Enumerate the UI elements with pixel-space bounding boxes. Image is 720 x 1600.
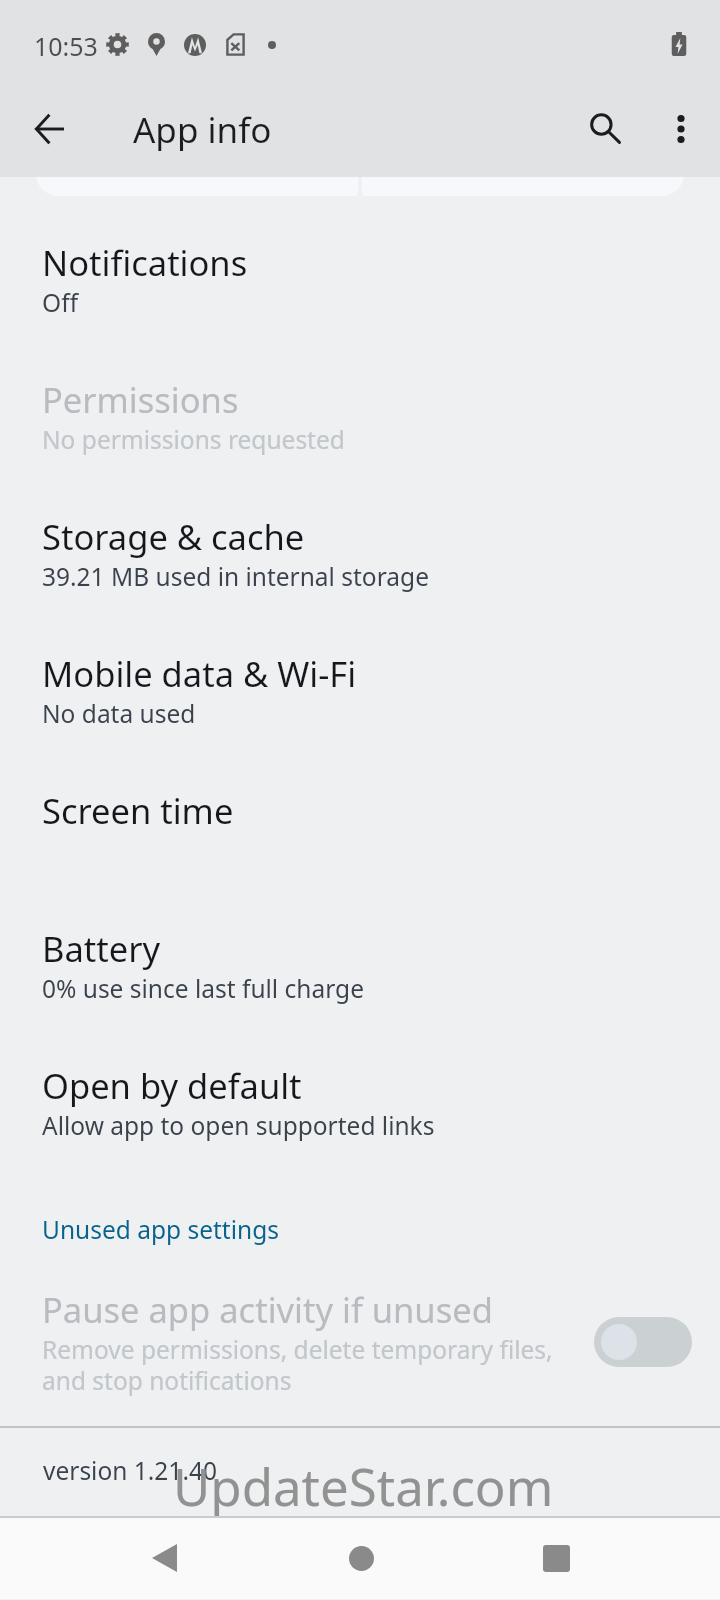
staticText: UpdateStar.com	[173, 1451, 554, 1518]
staticText: App info	[133, 106, 272, 154]
button[interactable]: Home	[316, 1513, 406, 1600]
staticText: 39.21 MB used in internal storage	[42, 560, 429, 593]
staticText: Off	[42, 286, 78, 319]
staticText: Open by default	[42, 1062, 302, 1109]
staticText: Allow app to open supported links	[42, 1109, 435, 1142]
button[interactable]: Recent apps	[511, 1513, 601, 1600]
staticText: Pause app activity if unused	[42, 1286, 493, 1333]
button[interactable]: Navigate up	[8, 88, 90, 170]
staticText: version 1.21.40	[43, 1454, 217, 1487]
button[interactable]: Back	[119, 1513, 209, 1600]
button[interactable]: More options	[640, 88, 720, 170]
staticText: 10:53	[34, 29, 98, 63]
staticText: Remove permissions, delete temporary fil…	[42, 1333, 572, 1397]
button[interactable]: Notifications	[0, 239, 720, 325]
staticText: Screen time	[42, 787, 234, 834]
button[interactable]: Mobile data & Wi-Fi	[0, 650, 720, 736]
staticText: Unused app settings	[42, 1213, 279, 1246]
button[interactable]: Battery	[0, 925, 720, 1011]
staticText: 0% use since last full charge	[42, 972, 364, 1005]
button[interactable]: Storage & cache	[0, 513, 720, 599]
staticText: Permissions	[42, 376, 239, 423]
button[interactable]: Unused app settings	[0, 1196, 720, 1258]
button[interactable]: Uninstall	[362, 150, 684, 196]
button[interactable]: Permissions	[0, 376, 720, 462]
staticText: Battery	[42, 925, 160, 972]
staticText: No data used	[42, 697, 196, 730]
button[interactable]: Open	[36, 150, 358, 196]
staticText: Mobile data & Wi-Fi	[42, 650, 357, 697]
staticText: No permissions requested	[42, 423, 345, 456]
button[interactable]: Open by default	[0, 1062, 720, 1148]
button[interactable]: Pause app activity if unused	[0, 1286, 720, 1407]
button[interactable]: Search	[565, 88, 647, 170]
staticText: Storage & cache	[42, 513, 305, 560]
button[interactable]: Screen time	[0, 787, 720, 840]
button[interactable]: Pause app activity if unused toggle	[594, 1317, 692, 1367]
staticText: Notifications	[42, 239, 248, 286]
